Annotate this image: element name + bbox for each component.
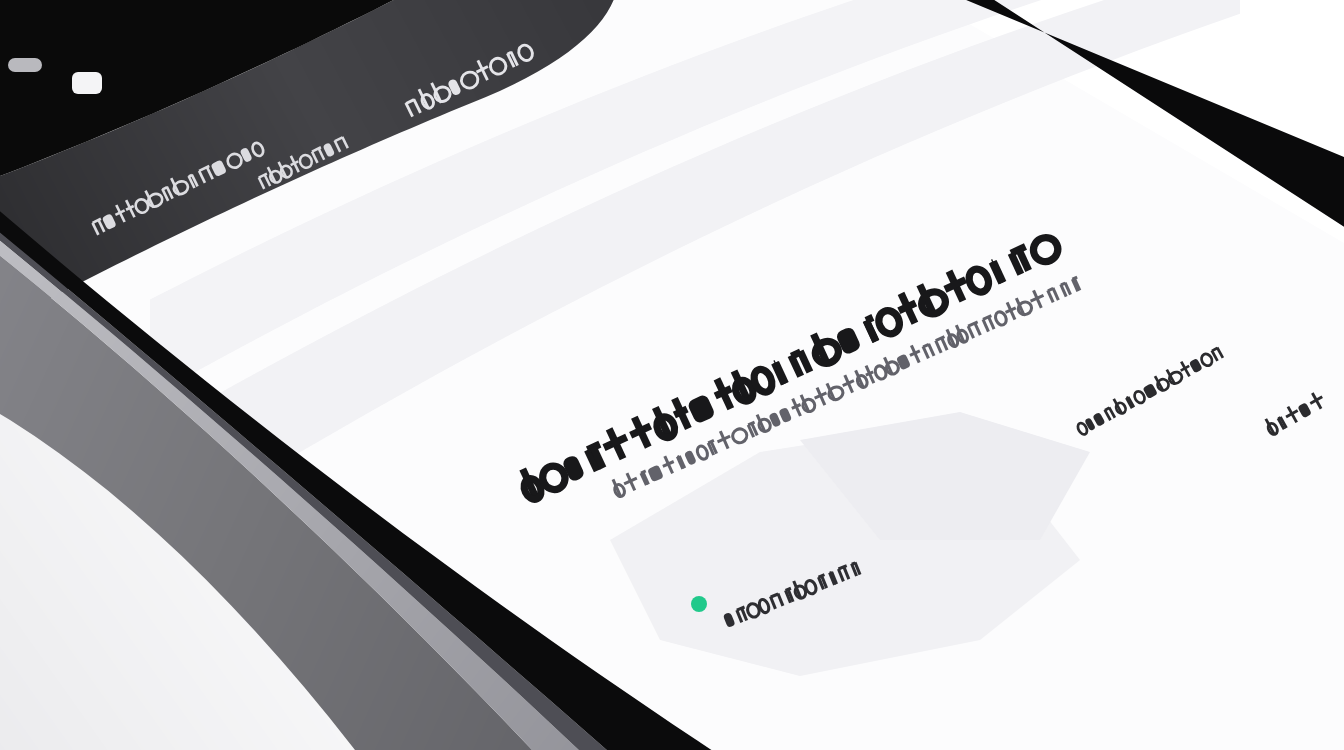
other: App screen — [0, 0, 1344, 750]
